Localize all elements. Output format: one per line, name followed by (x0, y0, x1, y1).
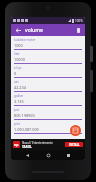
button[interactable]: kubieke meter (14, 38, 82, 52)
staticText: el op (14, 66, 22, 70)
staticText: TAMIL (22, 145, 32, 149)
staticText: 100% (75, 19, 83, 23)
button[interactable]: Calculate (70, 125, 81, 136)
staticText: volume (25, 27, 43, 34)
staticText: np (14, 142, 19, 147)
staticText: pint (14, 122, 20, 126)
button[interactable]: pot (14, 108, 82, 122)
button[interactable]: liter (14, 52, 82, 66)
staticText: 800.198900 (14, 113, 35, 118)
staticText: kubieke meter (14, 38, 36, 42)
button[interactable]: Back (14, 26, 22, 34)
button[interactable]: gallon (14, 94, 82, 108)
button[interactable]: Recent apps (64, 151, 73, 160)
staticText: 1000 (14, 43, 23, 48)
button[interactable]: Home (44, 151, 53, 160)
button[interactable]: el op (14, 66, 82, 80)
button[interactable]: np (11, 139, 85, 150)
staticText: Nuzul / Entretenimento (22, 141, 53, 145)
staticText: 42.234 (14, 85, 26, 90)
staticText: INSTALL (69, 143, 80, 147)
staticText: pot (14, 108, 20, 112)
staticText: 10000 (14, 57, 25, 62)
button[interactable]: vat (14, 80, 82, 94)
button[interactable]: Back (23, 151, 32, 160)
staticText: 0 (14, 71, 17, 76)
button[interactable]: pint (14, 122, 82, 136)
button[interactable]: INSTALL (65, 142, 83, 147)
staticText: vat (14, 80, 19, 84)
button[interactable]: More options (74, 26, 82, 34)
staticText: 3.135 (14, 99, 24, 104)
staticText: gallon (14, 94, 24, 98)
staticText: liter (14, 52, 20, 56)
staticText: 1.090.087.009 (14, 127, 39, 132)
